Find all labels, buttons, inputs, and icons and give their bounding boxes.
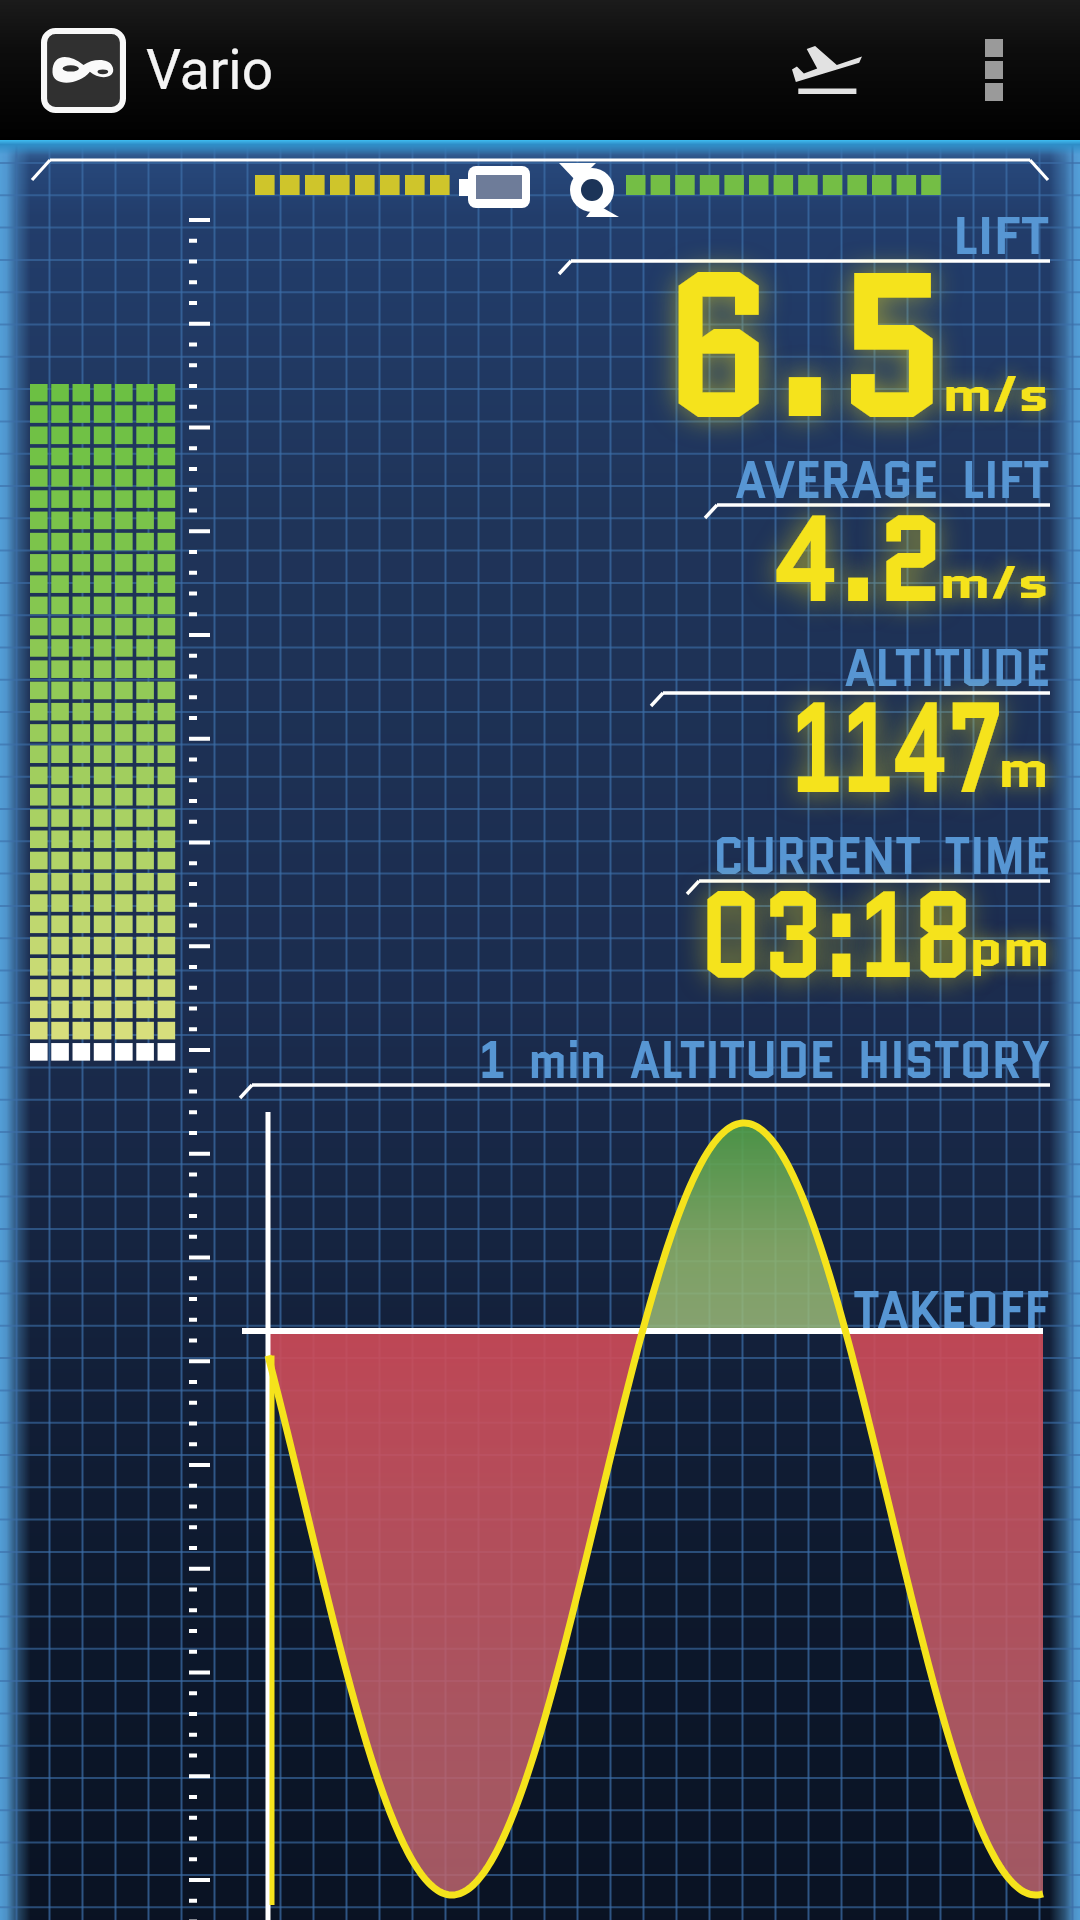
staticText: m/s	[942, 361, 1050, 429]
staticText: m	[998, 733, 1050, 806]
staticText: LIFT	[953, 199, 1050, 274]
staticText: AVERAGE LIFT	[735, 443, 1050, 518]
staticText: m/s	[939, 551, 1050, 615]
staticText: 03:18	[700, 848, 974, 1021]
button[interactable]: Variometer display	[0, 140, 1080, 1920]
staticText: TAKEOFF	[853, 1273, 1050, 1348]
staticText: ALTITUDE	[845, 631, 1050, 706]
staticText: Vario	[146, 38, 274, 102]
staticText: 1147	[791, 657, 1003, 838]
staticText: CURRENT TIME	[713, 819, 1050, 894]
button[interactable]: More options	[940, 0, 1048, 140]
staticText: pm	[969, 911, 1050, 985]
staticText: 4.2	[773, 471, 944, 646]
button[interactable]: Takeoff	[757, 0, 897, 140]
button[interactable]: Vario	[0, 0, 430, 140]
staticText: 1 min ALTITUDE HISTORY	[479, 1023, 1050, 1098]
staticText: 6.5	[664, 200, 947, 490]
